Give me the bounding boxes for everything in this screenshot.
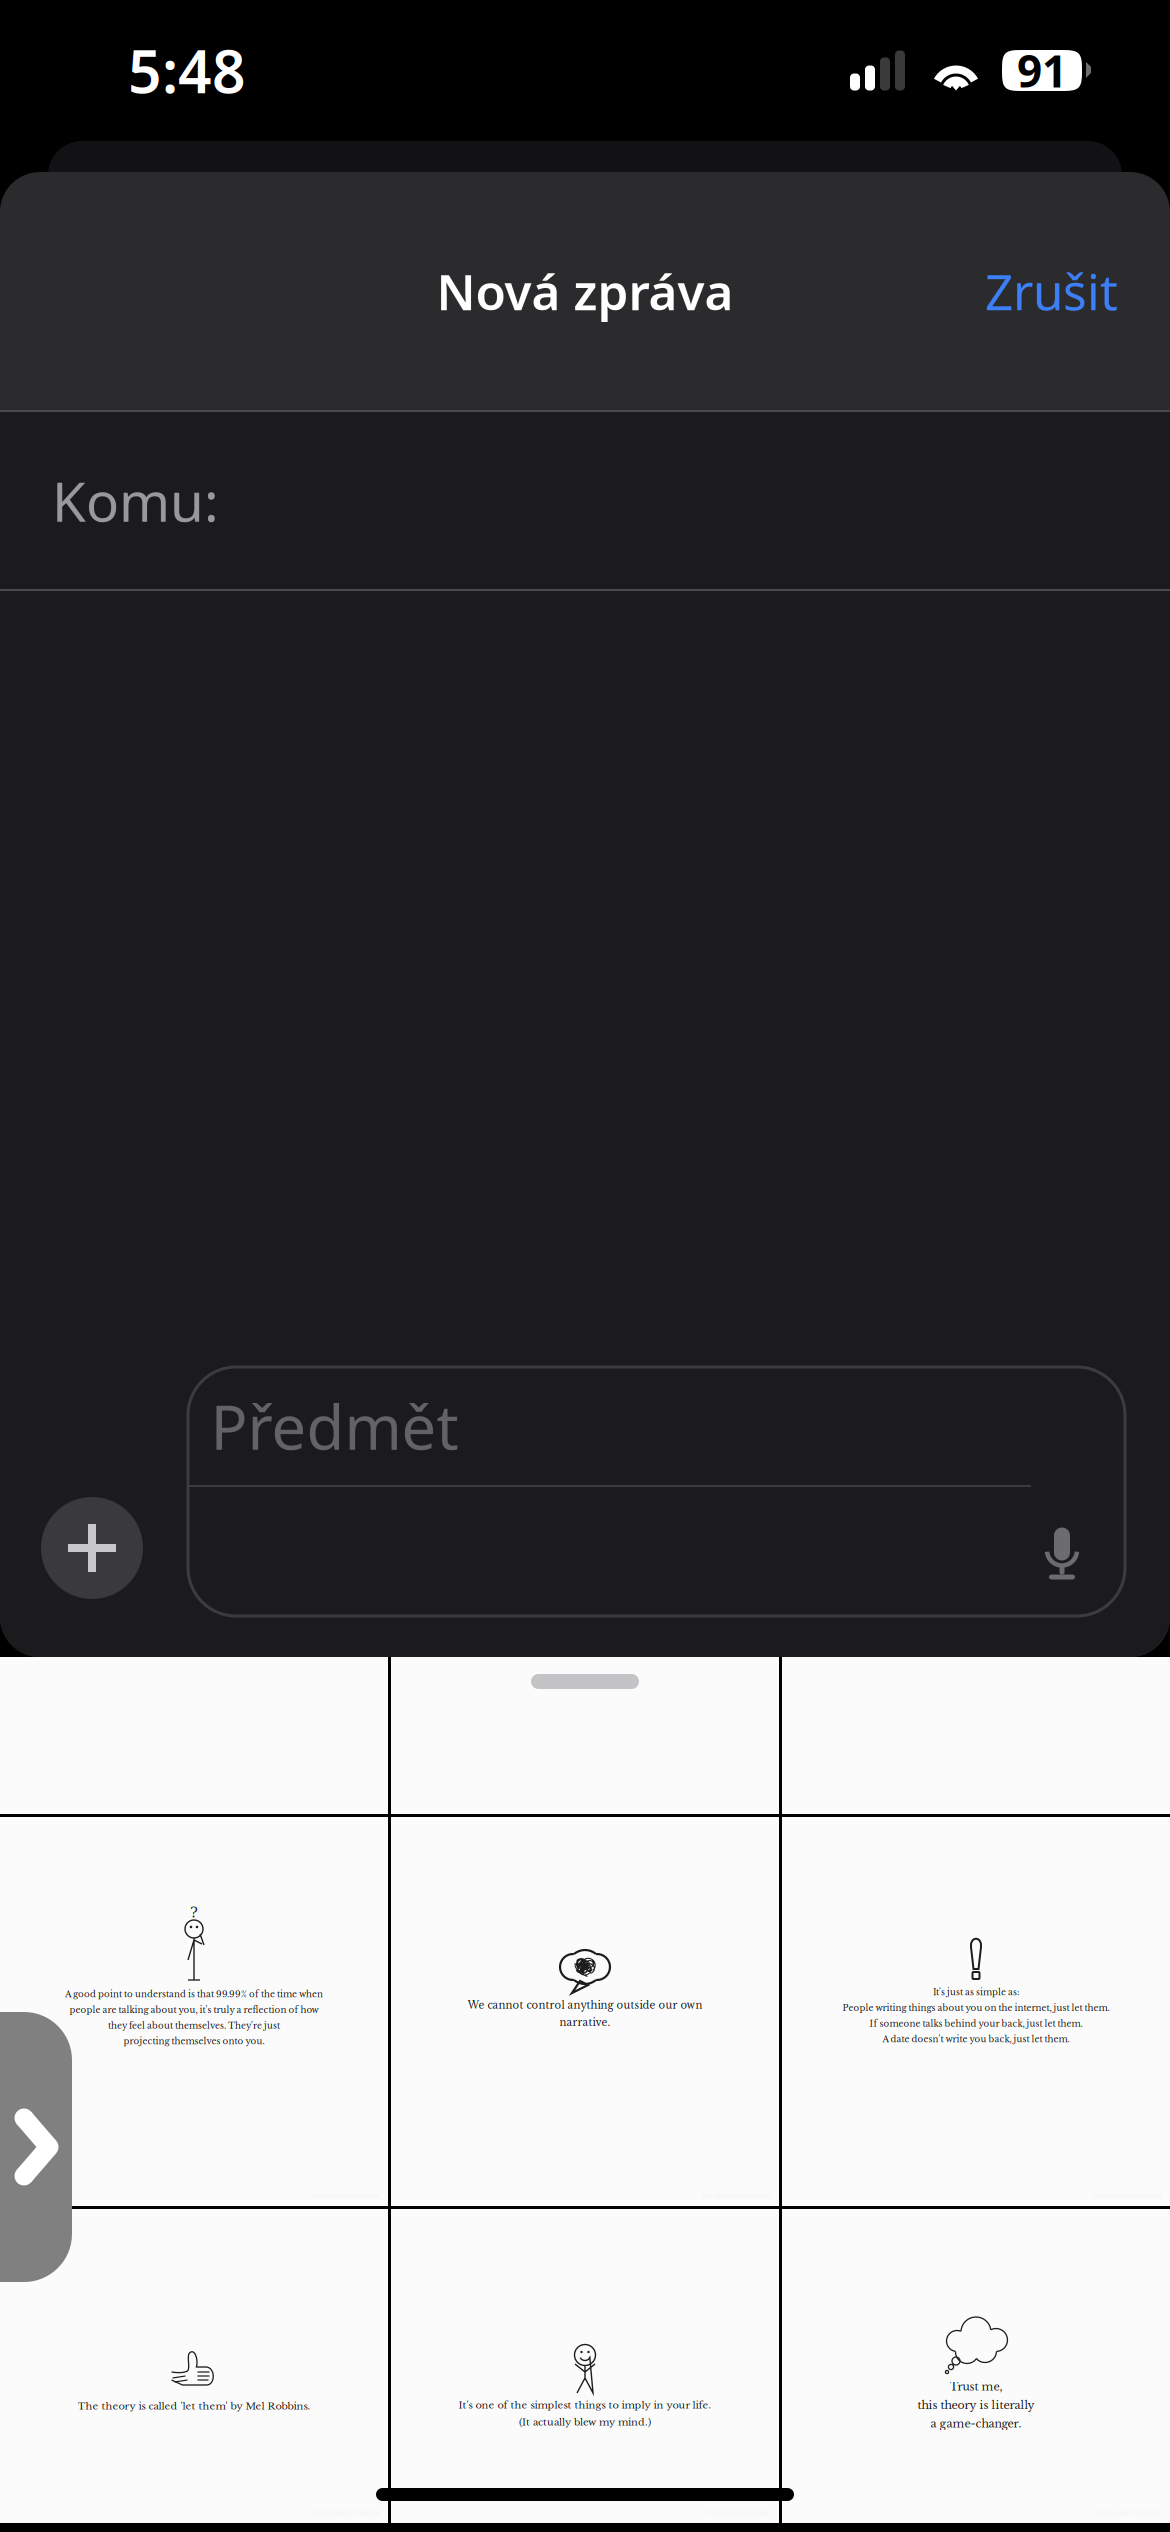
staticText: they feel about themselves. They're just <box>108 2020 280 2031</box>
button[interactable]: Zrušit <box>858 231 1118 351</box>
button[interactable]: Photo: just let them <box>782 1817 1170 2206</box>
staticText: It's one of the simplest things to imply… <box>458 2399 711 2411</box>
staticText: 5:48 <box>128 31 246 109</box>
button[interactable]: Komu: <box>0 412 1170 589</box>
button[interactable]: Photo: reflection quote <box>0 1817 388 2206</box>
button[interactable]: Photo: game changer <box>782 2209 1170 2523</box>
button[interactable]: Show more photos <box>0 2012 72 2282</box>
staticText: Komu: <box>52 464 219 537</box>
button[interactable]: Photo: simplest things <box>391 2209 779 2523</box>
staticText: Trust me, <box>949 2380 1002 2393</box>
button[interactable]: Photo: let them theory <box>0 2209 388 2523</box>
staticText: People writing things about you on the i… <box>842 2003 1109 2013</box>
staticText: It's just as simple as: <box>933 1987 1019 1998</box>
staticText: a game-changer. <box>930 2417 1021 2430</box>
staticText: Zrušit <box>985 258 1118 324</box>
staticText: narrative. <box>559 2016 610 2029</box>
button[interactable]: Dictate <box>1044 1527 1080 1579</box>
staticText: this theory is literally <box>917 2398 1034 2412</box>
staticText: ? <box>190 1904 198 1921</box>
staticText: A date doesn't write you back, just let … <box>882 2034 1069 2045</box>
staticText: projecting themselves onto you. <box>123 2036 264 2047</box>
button[interactable]: Add attachment <box>41 1497 143 1599</box>
staticText: The theory is called 'let them' by Mel R… <box>77 2400 310 2412</box>
staticText: 91 <box>1017 41 1067 100</box>
staticText: (It actually blew my mind.) <box>519 2416 651 2428</box>
button[interactable]: Photo: narrative quote <box>391 1817 779 2206</box>
staticText: We cannot control anything outside our o… <box>467 1999 702 2011</box>
staticText: A good point to understand is that 99.99… <box>65 1989 323 2000</box>
staticText: Předmět <box>210 1385 458 1467</box>
staticText: If someone talks behind your back, just … <box>869 2018 1082 2029</box>
staticText: Nová zpráva <box>436 258 733 324</box>
staticText: people are talking about you, it's truly… <box>69 2005 318 2015</box>
